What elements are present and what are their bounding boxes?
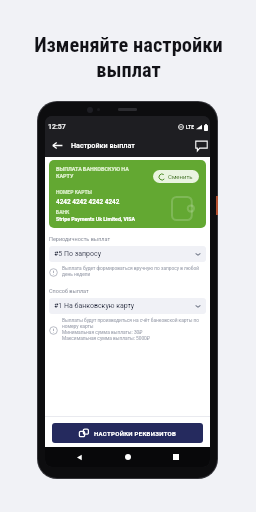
staticText: #1 На банковскую карту — [54, 302, 135, 310]
staticText: Выплата будет формироваться вручную по з… — [62, 266, 199, 272]
staticText: Stripe Payments Uk Limited, VISA — [56, 216, 135, 222]
staticText: Способ выплат — [49, 288, 89, 294]
staticText: 12:57 — [48, 123, 66, 131]
staticText: БАНК — [56, 209, 70, 215]
staticText: Изменяйте настройки выплат — [34, 33, 223, 82]
staticText: LTE — [186, 124, 194, 130]
staticText: НАСТРОЙКИ РЕКВИЗИТОВ — [94, 430, 177, 437]
button[interactable]: Сменить — [153, 170, 199, 183]
staticText: 4242 4242 4242 4242 — [56, 198, 120, 206]
staticText: #5 По запросу — [54, 250, 102, 258]
button[interactable]: Назад — [76, 454, 83, 461]
button[interactable]: Главный экран — [125, 454, 131, 460]
button[interactable]: Назад — [51, 139, 64, 152]
staticText: Периодичность выплат — [49, 236, 111, 242]
staticText: ВЫПЛАТА БАНКОВСКУЮ НА КАРТУ — [56, 166, 129, 179]
button[interactable]: НАСТРОЙКИ РЕКВИЗИТОВ — [52, 423, 203, 443]
button[interactable]: ВЫПЛАТА БАНКОВСКУЮ НА КАРТУ — [49, 160, 206, 228]
staticText: Максимальная сумма выплаты: 5000₽ — [62, 336, 150, 342]
staticText: Сменить — [168, 173, 193, 180]
staticText: Минимальная сумма выплаты: 30₽ — [62, 330, 143, 336]
button[interactable]: Чат поддержки — [195, 139, 208, 152]
staticText: день недели — [62, 272, 91, 278]
staticText: Выплаты будут производиться на счёт банк… — [62, 318, 200, 324]
staticText: Настройки выплат — [71, 141, 135, 149]
staticText: НОМЕР КАРТЫ — [56, 189, 92, 195]
staticText: номеру карты — [62, 324, 94, 330]
button[interactable]: #1 На банковскую карту — [49, 298, 206, 314]
button[interactable]: #5 По запросу — [49, 246, 206, 262]
